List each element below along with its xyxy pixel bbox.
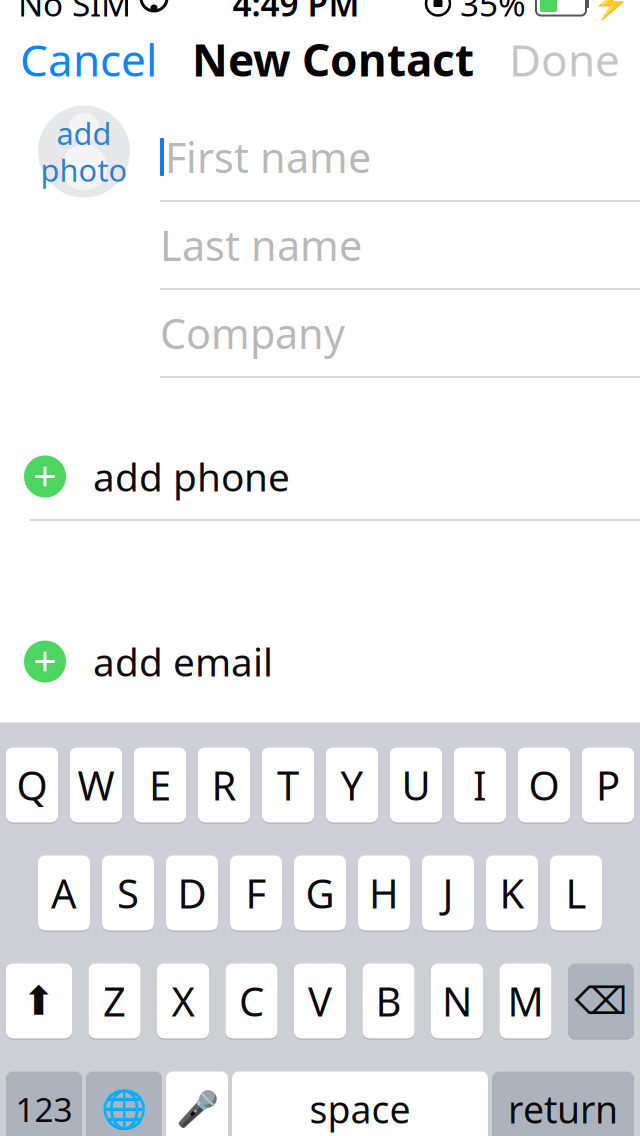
button[interactable]: H [358,854,410,931]
staticText: return [508,1084,618,1134]
staticText: Q [16,758,47,811]
staticText: K [499,866,524,919]
staticText: Done [509,30,620,89]
button[interactable]: return [492,1070,634,1136]
button[interactable]: add photo [38,105,130,197]
staticText: add phone [93,451,290,502]
button[interactable]: R [198,746,250,823]
button[interactable]: Dictation [166,1070,228,1136]
staticText: M [507,974,543,1027]
staticText: L [565,866,586,919]
staticText: add email [93,636,273,687]
staticText: V [308,974,332,1027]
button[interactable]: I [454,746,506,823]
staticText: 35% [460,0,526,26]
button[interactable]: A [38,854,90,931]
button[interactable]: D [166,854,218,931]
button[interactable]: Done [489,26,640,92]
button[interactable]: E [134,746,186,823]
staticText: New Contact [192,30,474,89]
button[interactable]: O [518,746,570,823]
staticText: X [171,974,194,1027]
button[interactable]: Delete [568,962,634,1039]
button[interactable]: space [232,1070,488,1136]
staticText: B [375,974,401,1027]
button[interactable]: M [499,962,551,1039]
staticText: 🌐 [101,1088,147,1130]
button[interactable]: Shift [6,962,72,1039]
staticText: 🎤 [175,1089,218,1129]
button[interactable]: Cancel [0,26,177,92]
staticText: I [473,758,487,811]
staticText: C [239,974,264,1027]
button[interactable]: L [550,854,602,931]
button[interactable]: P [582,746,634,823]
staticText: 4:49 PM [232,0,359,26]
staticText: ⌫ [574,980,627,1022]
staticText: add [56,113,111,153]
staticText: G [305,866,334,919]
button[interactable]: V [294,962,346,1039]
staticText: ⬆ [22,978,56,1024]
staticText: R [211,758,236,811]
staticText: U [401,758,430,811]
staticText: T [277,758,299,811]
staticText: Z [103,974,126,1027]
staticText: space [309,1084,410,1134]
staticText: D [177,866,206,919]
staticText: No SIM [18,0,131,26]
staticText: Company [160,306,345,360]
staticText: J [442,866,453,919]
button[interactable]: C [225,962,277,1039]
staticText: F [245,866,266,919]
button[interactable]: X [157,962,209,1039]
button[interactable]: B [362,962,414,1039]
button[interactable]: T [262,746,314,823]
staticText: H [369,866,399,919]
staticText: P [596,758,620,811]
staticText: S [117,866,139,919]
staticText: First name [165,130,371,184]
staticText: photo [40,149,127,190]
staticText: O [528,758,559,811]
button[interactable]: Next keyboard [86,1070,162,1136]
button[interactable]: N [431,962,483,1039]
button[interactable]: add email [0,618,640,704]
button[interactable]: K [486,854,538,931]
button[interactable]: U [390,746,442,823]
staticText: Cancel [20,30,157,89]
button[interactable]: J [422,854,474,931]
button[interactable]: add phone [0,433,640,519]
staticText: ⚡ [593,0,630,20]
button[interactable]: F [230,854,282,931]
button[interactable]: Q [6,746,58,823]
staticText: Last name [160,218,362,272]
staticText: N [442,974,472,1027]
staticText: E [149,758,171,811]
staticText: Y [340,758,363,811]
staticText: W [77,758,114,811]
button[interactable]: Y [326,746,378,823]
button[interactable]: S [102,854,154,931]
button[interactable]: G [294,854,346,931]
button[interactable]: 123 [6,1070,82,1136]
button[interactable]: Z [88,962,140,1039]
staticText: 123 [15,1087,72,1131]
button[interactable]: W [70,746,122,823]
staticText: A [51,866,77,919]
